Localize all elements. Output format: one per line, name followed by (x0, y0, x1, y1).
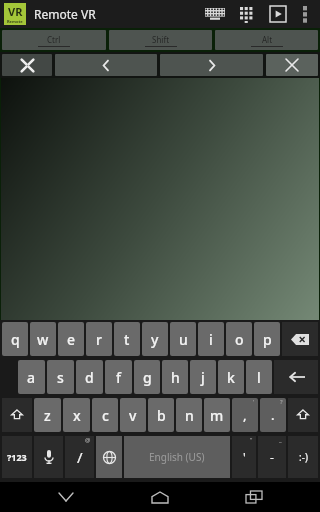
staticText: i (209, 330, 213, 349)
staticText: r (96, 330, 102, 349)
staticText: Alt (262, 34, 273, 45)
button[interactable]: c (92, 398, 118, 432)
button[interactable]: d (76, 360, 103, 394)
staticText: y (151, 330, 159, 349)
button[interactable]: Keyboard (198, 0, 232, 28)
button[interactable]: Previous (55, 54, 157, 76)
button[interactable]: e (58, 322, 84, 356)
button[interactable]: Recent apps (226, 482, 282, 512)
staticText: c (102, 406, 109, 425)
staticText: h (171, 368, 180, 387)
button[interactable]: j (190, 360, 216, 394)
button[interactable]: Enter (274, 360, 318, 394)
button[interactable]: m (204, 398, 230, 432)
staticText: p (263, 330, 272, 349)
staticText: q (11, 330, 20, 349)
button[interactable]: Home (132, 482, 188, 512)
button[interactable]: Dialpad (232, 0, 262, 28)
button[interactable]: ? (260, 398, 286, 432)
button[interactable]: r (86, 322, 112, 356)
button[interactable]: Shift (2, 398, 32, 432)
button[interactable]: l (246, 360, 272, 394)
button[interactable]: h (162, 360, 188, 394)
button[interactable]: b (148, 398, 174, 432)
staticText: ?123 (7, 451, 27, 463)
button[interactable] (1, 78, 319, 320)
staticText: n (185, 406, 194, 425)
staticText: @ (85, 436, 91, 444)
button[interactable]: z (34, 398, 61, 432)
button[interactable]: " (232, 436, 256, 478)
staticText: / (77, 447, 83, 467)
button[interactable]: t (114, 322, 140, 356)
button[interactable]: Change language (96, 436, 122, 478)
staticText: _ (279, 436, 282, 444)
button[interactable]: x (63, 398, 90, 432)
button[interactable]: g (134, 360, 160, 394)
staticText: m (210, 406, 224, 425)
button[interactable]: Alt (215, 30, 318, 50)
button[interactable]: u (170, 322, 196, 356)
button[interactable]: i (198, 322, 224, 356)
button[interactable]: k (218, 360, 244, 394)
button[interactable]: a (18, 360, 45, 394)
staticText: " (250, 436, 253, 444)
staticText: a (27, 368, 36, 387)
staticText: Remote (7, 19, 23, 24)
button[interactable]: w (30, 322, 56, 356)
staticText: f (116, 368, 121, 387)
button[interactable]: Voice input (34, 436, 63, 478)
button[interactable]: App icon (4, 3, 26, 25)
staticText: e (67, 330, 76, 349)
staticText: w (37, 330, 49, 349)
staticText: u (179, 330, 188, 349)
staticText: Remote VR (34, 6, 96, 22)
button[interactable]: Hide keyboard (38, 482, 94, 512)
staticText: VR (8, 4, 23, 19)
button[interactable]: ' (232, 398, 258, 432)
button[interactable]: Backspace (282, 322, 318, 356)
staticText: English (US) (149, 450, 205, 464)
button[interactable]: n (176, 398, 202, 432)
staticText: ' (253, 398, 255, 406)
button[interactable]: @ (65, 436, 94, 478)
staticText: x (73, 406, 81, 425)
button[interactable]: Close (266, 54, 318, 76)
staticText: j (201, 368, 205, 387)
button[interactable]: v (120, 398, 146, 432)
staticText: k (227, 368, 235, 387)
staticText: z (44, 406, 51, 425)
button[interactable]: p (254, 322, 280, 356)
button[interactable]: q (2, 322, 28, 356)
button[interactable]: More options (294, 0, 316, 28)
button[interactable]: y (142, 322, 168, 356)
button[interactable]: Shift (109, 30, 212, 50)
staticText: s (57, 368, 64, 387)
staticText: , (243, 406, 247, 424)
button[interactable]: ?123 (2, 436, 32, 478)
staticText: b (157, 406, 166, 425)
staticText: - (270, 449, 274, 465)
staticText: Ctrl (47, 34, 61, 45)
button[interactable]: Fullscreen (2, 54, 52, 76)
staticText: v (129, 406, 137, 425)
staticText: ? (280, 398, 283, 406)
button[interactable]: English (US) (124, 436, 230, 478)
button[interactable]: f (105, 360, 132, 394)
staticText: o (235, 330, 244, 349)
staticText: g (143, 368, 152, 387)
staticText: t (124, 330, 130, 349)
button[interactable]: s (47, 360, 74, 394)
button[interactable]: Shift (288, 398, 318, 432)
button[interactable]: Next (160, 54, 263, 76)
staticText: :-) (299, 450, 308, 464)
staticText: d (85, 368, 94, 387)
staticText: l (257, 368, 261, 387)
button[interactable]: :-) (288, 436, 318, 478)
button[interactable]: _ (258, 436, 286, 478)
button[interactable]: o (226, 322, 252, 356)
staticText: Shift (152, 34, 170, 45)
button[interactable]: Play (262, 0, 294, 28)
button[interactable]: Ctrl (2, 30, 106, 50)
staticText: ' (243, 449, 246, 465)
